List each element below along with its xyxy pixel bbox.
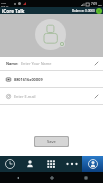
button[interactable]: Back [0,172,35,183]
staticText: Save [47,139,56,144]
button[interactable]: Recent calls [0,156,20,172]
button[interactable]: Name: [0,57,103,70]
button[interactable]: Save [35,137,68,146]
button[interactable]: More [61,156,82,172]
button[interactable]: Profile [82,156,103,172]
button[interactable]: Edit [89,57,103,70]
staticText: iCore Talk [2,8,25,14]
button[interactable]: Contacts [20,156,40,172]
button[interactable]: Recents [69,172,103,183]
staticText: 7:09 [91,2,97,6]
button[interactable]: Profile photo [35,19,66,50]
button[interactable]: Enter E-mail [0,88,103,104]
staticText: Sep 25 [1,4,9,7]
button[interactable]: Home [35,172,69,183]
staticText: Balance: 0.0000 [72,9,95,13]
staticText: pm [98,3,102,6]
button[interactable]: 8801616x00X09 [0,71,103,87]
button[interactable]: Add balance [96,8,102,14]
staticText: Enter Your Name [21,61,52,66]
staticText: Enter E-mail [14,94,36,99]
button[interactable]: Keypad [40,156,61,172]
staticText: Wed [1,1,6,4]
button[interactable]: Edit [89,88,103,104]
staticText: 8801616x00X09 [14,77,43,82]
staticText: Name: [6,61,19,66]
